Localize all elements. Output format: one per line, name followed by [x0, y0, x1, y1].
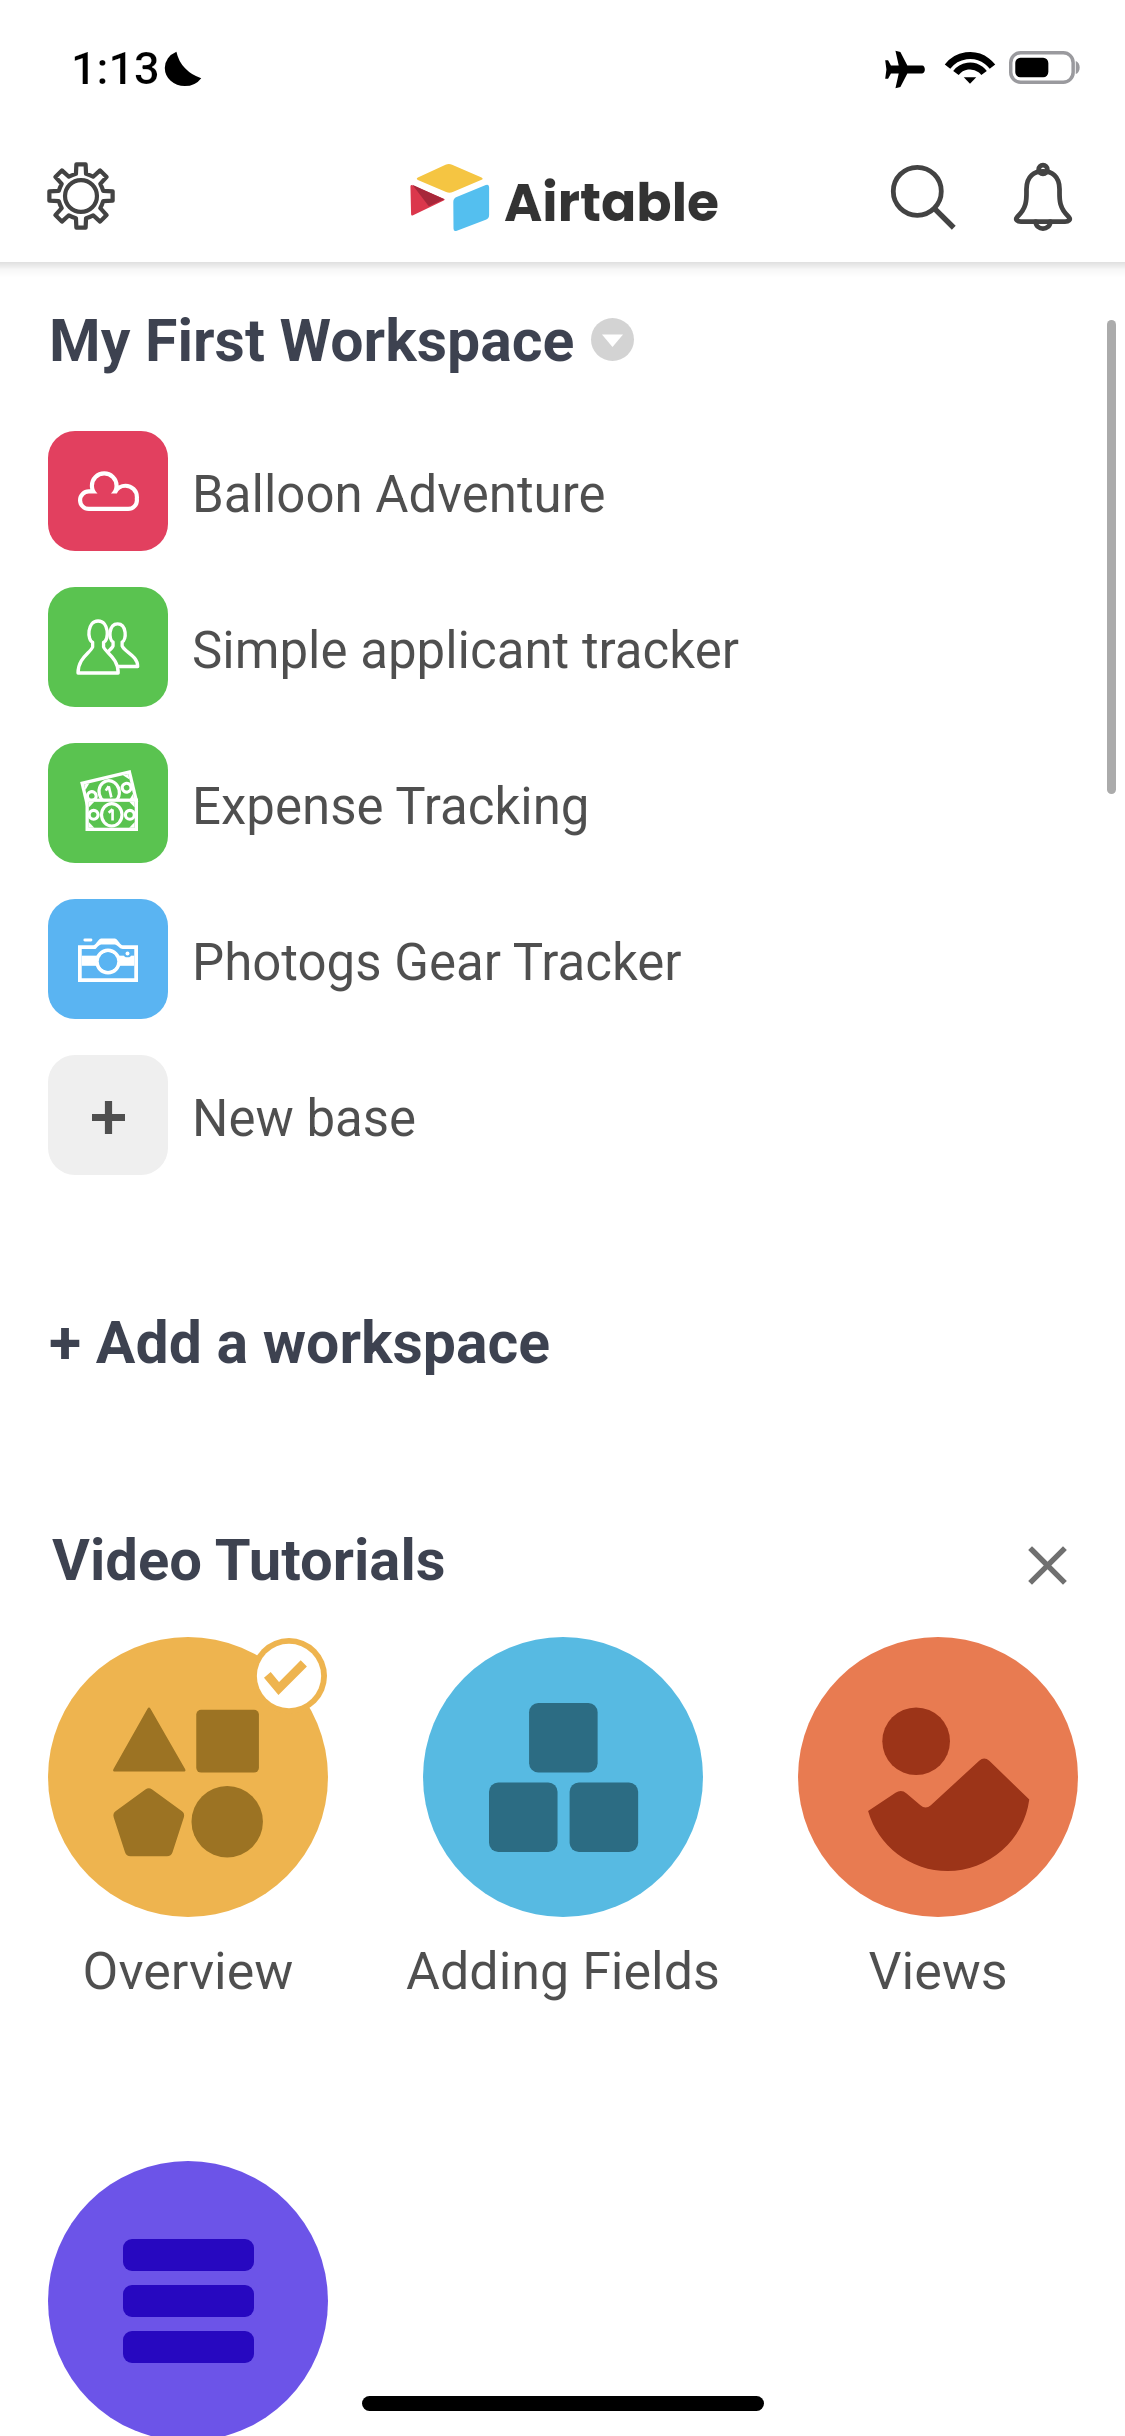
button[interactable]: Expense Tracking [48, 743, 590, 863]
button[interactable]: Search [866, 144, 970, 248]
button[interactable]: Adding Fields [363, 1637, 763, 2002]
staticText: Airtable [504, 166, 720, 239]
staticText: New base [192, 1089, 417, 1149]
staticText: Adding Fields [363, 1941, 763, 2002]
staticText: + Add a workspace [49, 1308, 551, 1377]
button[interactable]: My First Workspace [31, 300, 652, 380]
button[interactable]: Video Tutorials [52, 1526, 446, 1594]
button[interactable]: Overview [0, 1637, 388, 2002]
staticText: Expense Tracking [192, 777, 590, 837]
button[interactable]: Simple applicant tracker [48, 587, 739, 707]
staticText: Overview [0, 1941, 388, 2002]
button[interactable]: Dismiss video tutorials [995, 1513, 1099, 1617]
staticText: Views [738, 1941, 1125, 2002]
button[interactable]: Balloon Adventure [48, 431, 606, 551]
staticText: My First Workspace [49, 306, 575, 375]
staticText: 1:13 [71, 42, 160, 95]
button[interactable]: Menu [48, 2161, 328, 2436]
button[interactable]: New base [48, 1055, 417, 1175]
button[interactable]: + Add a workspace [31, 1297, 591, 1387]
button[interactable]: Settings [29, 144, 133, 248]
staticText: Simple applicant tracker [192, 621, 739, 681]
staticText: Photogs Gear Tracker [192, 933, 682, 993]
button[interactable]: Views [738, 1637, 1125, 2002]
staticText: Balloon Adventure [192, 465, 606, 525]
button[interactable]: Notifications [991, 144, 1095, 248]
button[interactable]: Photogs Gear Tracker [48, 899, 682, 1019]
